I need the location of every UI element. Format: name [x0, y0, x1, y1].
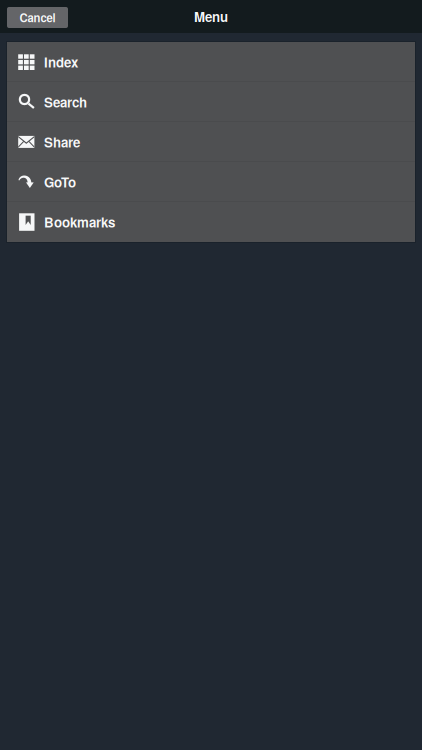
button[interactable]: Share — [7, 122, 415, 162]
staticText: Index — [44, 52, 78, 72]
button[interactable]: Cancel — [7, 5, 68, 28]
button[interactable]: Index — [7, 42, 415, 82]
button[interactable]: Search — [7, 82, 415, 122]
staticText: Menu — [194, 7, 228, 26]
button[interactable]: GoTo — [7, 162, 415, 202]
staticText: Share — [44, 132, 80, 152]
staticText: Bookmarks — [44, 212, 115, 232]
staticText: GoTo — [44, 172, 76, 192]
button[interactable]: Bookmarks — [7, 202, 415, 242]
staticText: Cancel — [19, 9, 55, 26]
staticText: Search — [44, 92, 87, 112]
